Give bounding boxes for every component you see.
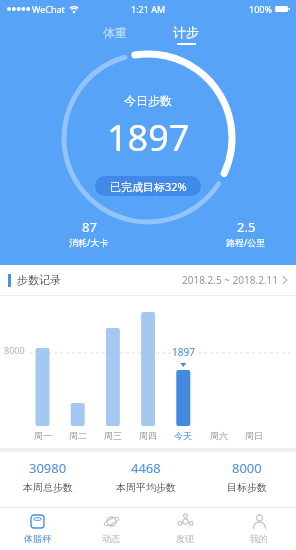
button[interactable]: 周一: [27, 430, 59, 441]
staticText: 周二: [69, 430, 87, 441]
staticText: 路程/公里: [226, 236, 266, 248]
button[interactable]: 周日: [238, 430, 270, 441]
staticText: 本周总步数: [23, 481, 73, 494]
staticText: 8000: [4, 344, 25, 356]
staticText: WeChat: [32, 3, 65, 15]
staticText: 步数记录: [17, 273, 61, 287]
button[interactable]: 体脂秤: [0, 508, 74, 550]
staticText: 8000: [232, 459, 262, 477]
button[interactable]: 步数记录: [0, 265, 296, 296]
staticText: 1897: [107, 113, 190, 162]
button[interactable]: 动态: [74, 508, 148, 550]
button[interactable]: 周六: [203, 430, 235, 441]
staticText: 100%: [249, 3, 272, 15]
button[interactable]: 发现: [148, 508, 222, 550]
button[interactable]: 我的: [222, 508, 296, 550]
button[interactable]: 计步: [164, 24, 208, 40]
staticText: 今日步数: [124, 93, 172, 108]
button[interactable]: 周三: [97, 430, 129, 441]
staticText: 目标步数: [227, 481, 267, 494]
staticText: 消耗/大卡: [69, 236, 109, 248]
button[interactable]: 体重: [93, 25, 137, 40]
button[interactable]: 周二: [62, 430, 94, 441]
staticText: 发现: [176, 533, 194, 544]
staticText: 今天: [174, 430, 192, 441]
staticText: 4468: [131, 459, 161, 477]
button[interactable]: 30980: [0, 452, 95, 500]
staticText: 30980: [29, 459, 67, 477]
staticText: 周六: [210, 430, 228, 441]
staticText: 体脂秤: [24, 533, 51, 544]
staticText: 我的: [250, 533, 268, 544]
staticText: 2018.2.5 ~ 2018.2.11: [182, 273, 278, 287]
button[interactable]: 8000: [197, 452, 296, 500]
staticText: 计步: [173, 24, 199, 40]
button[interactable]: 今天: [167, 430, 199, 441]
staticText: 周日: [245, 430, 263, 441]
staticText: 体重: [103, 25, 127, 40]
staticText: 周三: [104, 430, 122, 441]
staticText: 87: [82, 218, 97, 236]
staticText: 本周平均步数: [116, 481, 176, 494]
staticText: 已完成目标32%: [110, 179, 187, 194]
staticText: 1897: [172, 345, 195, 359]
button[interactable]: 4468: [95, 452, 197, 500]
staticText: 1:21 AM: [131, 3, 166, 15]
staticText: 动态: [102, 533, 120, 544]
staticText: 周四: [139, 430, 157, 441]
button[interactable]: 周四: [132, 430, 164, 441]
staticText: 2.5: [237, 218, 256, 236]
staticText: 周一: [34, 430, 52, 441]
